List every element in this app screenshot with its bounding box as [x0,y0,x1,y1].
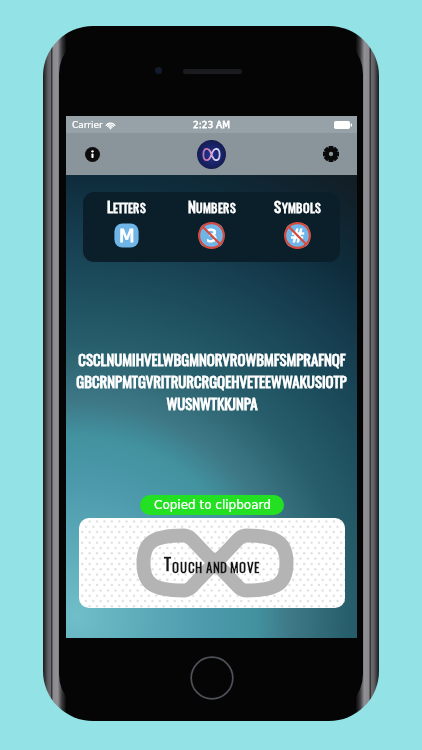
staticText: E [128,199,133,217]
staticText: WUSNWTKKJNPA [166,392,258,414]
staticText: GBCRNPMTGVRITRURCRGQEHVETEEWWAKUSIOTP [76,370,347,392]
staticText: N [188,195,196,217]
staticText: N [213,557,220,576]
staticText: M [230,557,239,576]
staticText: E [113,199,118,217]
staticText: Carrier [72,120,103,130]
staticText: D [220,557,227,576]
button[interactable]: Settings [323,146,339,162]
staticText: T [164,551,172,576]
staticText: V [247,557,254,576]
staticText: # [290,225,306,246]
button[interactable]: Copied to clipboard [140,495,284,515]
staticText: 2:23 AM [193,120,230,130]
staticText: Copied to clipboard [154,498,271,512]
button[interactable]: N [169,192,254,262]
button[interactable]: App logo [197,140,226,169]
staticText: R [223,199,230,217]
staticText: A [206,557,213,576]
staticText: S [315,199,321,217]
staticText: O [239,557,247,576]
staticText: E [254,557,260,576]
staticText: S [274,195,282,217]
staticText: U [180,557,188,576]
staticText: S [140,199,146,217]
staticText: S [230,199,236,217]
staticText: R [133,199,140,217]
staticText: B [296,199,303,217]
staticText: B [211,199,218,217]
staticText: H [195,557,203,576]
staticText: T [118,199,123,217]
staticText: 3 [206,225,218,246]
staticText: M [203,199,211,217]
staticText: U [196,199,203,217]
staticText: C [188,557,195,576]
staticText: Y [282,199,288,217]
button[interactable]: S [255,192,340,262]
staticText: M [288,199,296,217]
staticText: O [172,557,180,576]
button[interactable]: Info [85,147,100,162]
button[interactable]: L [84,192,169,262]
staticText: O [303,199,310,217]
staticText: T [123,199,128,217]
button[interactable]: Touch and move [79,518,345,608]
staticText: L [107,195,113,217]
staticText: L [310,199,315,217]
staticText: CSCLNUMIHVELWBGMNORVROWBMFSMPRAFNQF [78,348,346,370]
staticText: E [218,199,223,217]
staticText: M [119,225,135,246]
